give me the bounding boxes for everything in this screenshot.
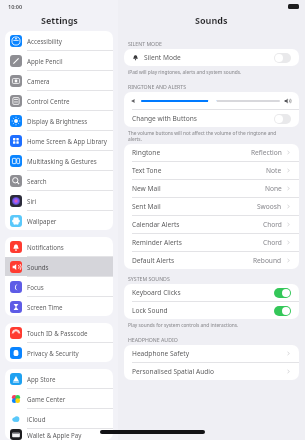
staticText: None — [265, 184, 282, 193]
button[interactable]: Apple Pencil — [5, 51, 113, 70]
staticText: Focus — [27, 283, 44, 291]
button[interactable]: Search — [5, 171, 113, 190]
staticText: HEADPHONE AUDIO — [128, 336, 178, 343]
staticText: Control Centre — [27, 97, 70, 105]
staticText: Calendar Alerts — [132, 220, 263, 229]
button[interactable]: Personalised Spatial Audio — [124, 363, 299, 380]
staticText: The volume buttons will not affect the v… — [128, 130, 291, 142]
staticText: Apple Pencil — [27, 57, 63, 65]
button[interactable]: Display & Brightness — [5, 111, 113, 130]
staticText: App Store — [27, 375, 56, 383]
button[interactable]: iCloud — [5, 409, 113, 428]
staticText: Wallet & Apple Pay — [27, 431, 82, 439]
staticText: Keyboard Clicks — [132, 288, 274, 297]
button[interactable]: Change with Buttons — [124, 110, 299, 127]
button[interactable]: Control Centre — [5, 91, 113, 110]
button[interactable]: Screen Time — [5, 297, 113, 316]
button[interactable]: Wallpaper — [5, 211, 113, 230]
staticText: Settings — [41, 14, 78, 26]
staticText: Notifications — [27, 243, 64, 251]
button[interactable]: Keyboard Clicks — [124, 284, 299, 301]
staticText: RINGTONE AND ALERTS — [128, 83, 186, 90]
button[interactable]: Sounds — [5, 257, 113, 276]
staticText: iCloud — [27, 415, 46, 423]
staticText: Chord — [263, 238, 282, 247]
button[interactable]: Headphone Safety — [124, 345, 299, 362]
staticText: 10:00 — [8, 3, 23, 10]
button[interactable]: Camera — [5, 71, 113, 90]
button[interactable]: Home Screen & App Library — [5, 131, 113, 150]
button[interactable]: Accessibility — [5, 31, 113, 50]
button[interactable]: Calendar Alerts — [124, 216, 299, 233]
staticText: Chord — [263, 220, 282, 229]
staticText: Reflection — [251, 148, 282, 157]
button[interactable]: Lock Sound — [124, 302, 299, 319]
button[interactable]: Silent Mode — [124, 49, 299, 66]
staticText: New Mail — [132, 184, 265, 193]
staticText: Play sounds for system controls and inte… — [128, 322, 239, 329]
staticText: Game Center — [27, 395, 66, 403]
staticText: Sent Mail — [132, 202, 257, 211]
staticText: Note — [266, 166, 282, 175]
staticText: Home Screen & App Library — [27, 137, 107, 145]
button[interactable]: Privacy & Security — [5, 343, 113, 362]
staticText: SILENT MODE — [128, 40, 162, 47]
staticText: Ringtone — [132, 148, 251, 157]
staticText: Privacy & Security — [27, 349, 79, 357]
button[interactable]: App Store — [5, 369, 113, 388]
button[interactable]: Notifications — [5, 237, 113, 256]
staticText: iPad will play ringtones, alerts and sys… — [128, 69, 242, 76]
staticText: Wallpaper — [27, 217, 57, 225]
staticText: SYSTEM SOUNDS — [128, 275, 170, 282]
button[interactable]: Text Tone — [124, 162, 299, 179]
staticText: Search — [27, 177, 47, 185]
button[interactable]: Game Center — [5, 389, 113, 408]
staticText: Touch ID & Passcode — [27, 329, 88, 337]
staticText: Swoosh — [257, 202, 282, 211]
staticText: Accessibility — [27, 37, 62, 45]
staticText: Reminder Alerts — [132, 238, 263, 247]
staticText: Silent Mode — [144, 53, 274, 62]
staticText: Lock Sound — [132, 306, 274, 315]
staticText: Screen Time — [27, 303, 63, 311]
button[interactable]: Touch ID & Passcode — [5, 323, 113, 342]
button[interactable]: Sent Mail — [124, 198, 299, 215]
button[interactable]: New Mail — [124, 180, 299, 197]
staticText: Headphone Safety — [132, 349, 286, 358]
staticText: Camera — [27, 77, 50, 85]
staticText: Sounds — [27, 263, 49, 271]
staticText: Sounds — [195, 14, 228, 26]
button[interactable]: Ringtone — [124, 144, 299, 161]
button[interactable]: Multitasking & Gestures — [5, 151, 113, 170]
button[interactable]: Reminder Alerts — [124, 234, 299, 251]
staticText: Text Tone — [132, 166, 266, 175]
button[interactable]: Focus — [5, 277, 113, 296]
staticText: Default Alerts — [132, 256, 253, 265]
button[interactable]: Wallet & Apple Pay — [5, 429, 113, 440]
staticText: Siri — [27, 197, 37, 205]
staticText: Change with Buttons — [132, 114, 274, 123]
staticText: Display & Brightness — [27, 117, 88, 125]
staticText: Rebound — [253, 256, 282, 265]
button[interactable]: Siri — [5, 191, 113, 210]
staticText: Multitasking & Gestures — [27, 157, 97, 165]
staticText: Personalised Spatial Audio — [132, 367, 286, 376]
button[interactable]: Default Alerts — [124, 252, 299, 269]
